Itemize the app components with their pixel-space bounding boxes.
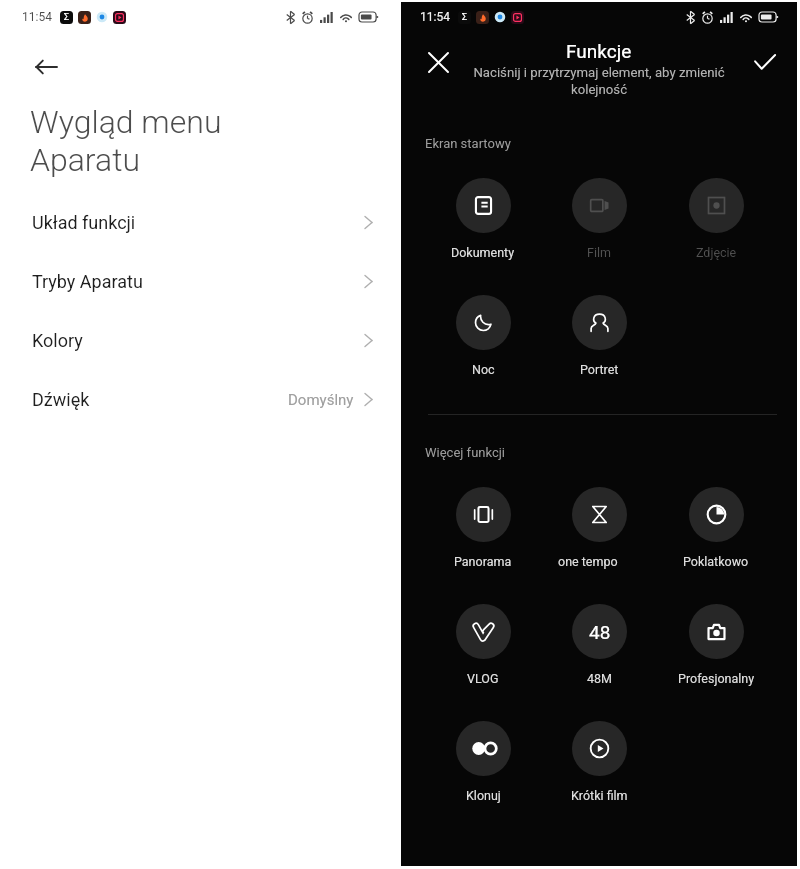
button[interactable]: Panorama	[428, 487, 538, 569]
staticText: Panorama	[454, 554, 512, 569]
button[interactable]: Noc	[428, 295, 538, 377]
staticText: 48M	[587, 671, 612, 686]
button[interactable]: Poklatkowo	[661, 487, 771, 569]
staticText: Poklatkowo	[683, 554, 749, 569]
button[interactable]: VLOG	[428, 604, 538, 686]
button[interactable]: Krótki film	[544, 721, 654, 803]
staticText: Film	[587, 245, 611, 260]
staticText: Ekran startowy	[425, 136, 511, 151]
button[interactable]: Film	[544, 178, 654, 260]
staticText: Zdjęcie	[696, 245, 737, 260]
button[interactable]: Profesjonalny	[661, 604, 771, 686]
button[interactable]: Dźwięk	[0, 370, 400, 429]
staticText: Σ	[64, 12, 70, 23]
staticText: VLOG	[467, 671, 499, 686]
staticText: Dokumenty	[451, 245, 515, 260]
staticText: Kolory	[32, 330, 83, 351]
button[interactable]: Kolory	[0, 311, 400, 370]
staticText: Σ	[462, 12, 468, 23]
staticText: 48	[589, 621, 611, 643]
staticText: Wygląd menu Aparatu	[30, 103, 222, 179]
staticText: Funkcje	[566, 40, 632, 62]
staticText: Tryby Aparatu	[32, 271, 143, 292]
staticText: Portret	[580, 362, 619, 377]
button[interactable]: Back	[25, 46, 67, 88]
button[interactable]: Klonuj	[428, 721, 538, 803]
staticText: Układ funkcji	[32, 212, 136, 233]
button[interactable]: Close	[419, 43, 457, 81]
staticText: Noc	[472, 362, 495, 377]
button[interactable]: Confirm	[746, 43, 784, 81]
button[interactable]: Dokumenty	[428, 178, 538, 260]
button[interactable]: one tempo	[544, 487, 654, 569]
staticText: 11:54	[420, 10, 450, 24]
staticText: 11:54	[22, 10, 52, 24]
button[interactable]: Tryby Aparatu	[0, 252, 400, 311]
button[interactable]: Układ funkcji	[0, 193, 400, 252]
staticText: Krótki film	[571, 788, 628, 803]
button[interactable]: Zdjęcie	[661, 178, 771, 260]
staticText: Więcej funkcji	[425, 445, 506, 460]
staticText: Dźwięk	[32, 389, 90, 410]
staticText: Domyślny	[288, 391, 354, 409]
button[interactable]: 48	[544, 604, 654, 686]
staticText: Klonuj	[466, 788, 501, 803]
staticText: one tempo	[558, 554, 618, 569]
staticText: Naciśnij i przytrzymaj element, aby zmie…	[459, 65, 739, 97]
staticText: Profesjonalny	[678, 671, 755, 686]
button[interactable]: Portret	[544, 295, 654, 377]
